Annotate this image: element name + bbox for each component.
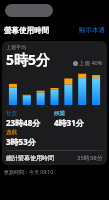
- staticText: 社交: [6, 110, 17, 117]
- button[interactable]: 顯示本週: [79, 26, 105, 34]
- staticText: 4時31分: [54, 117, 84, 128]
- staticText: 顯示本週: [79, 26, 105, 34]
- staticText: 上週平均: [6, 44, 26, 50]
- staticText: 娛樂: [54, 110, 65, 117]
- staticText: 3時53分: [6, 136, 36, 147]
- staticText: 5時5分: [6, 50, 51, 69]
- staticText: 更新時間：今天 09:10: [4, 169, 54, 176]
- staticText: 遊戲: [6, 129, 17, 136]
- staticText: 總計螢幕使用時間: [6, 154, 54, 162]
- staticText: 35時38分: [77, 154, 103, 162]
- staticText: 上週 40%: [79, 59, 103, 67]
- staticText: 螢幕使用時間: [4, 26, 49, 35]
- staticText: 23時48分: [6, 117, 41, 128]
- button[interactable]: 總計螢幕使用時間: [6, 151, 103, 165]
